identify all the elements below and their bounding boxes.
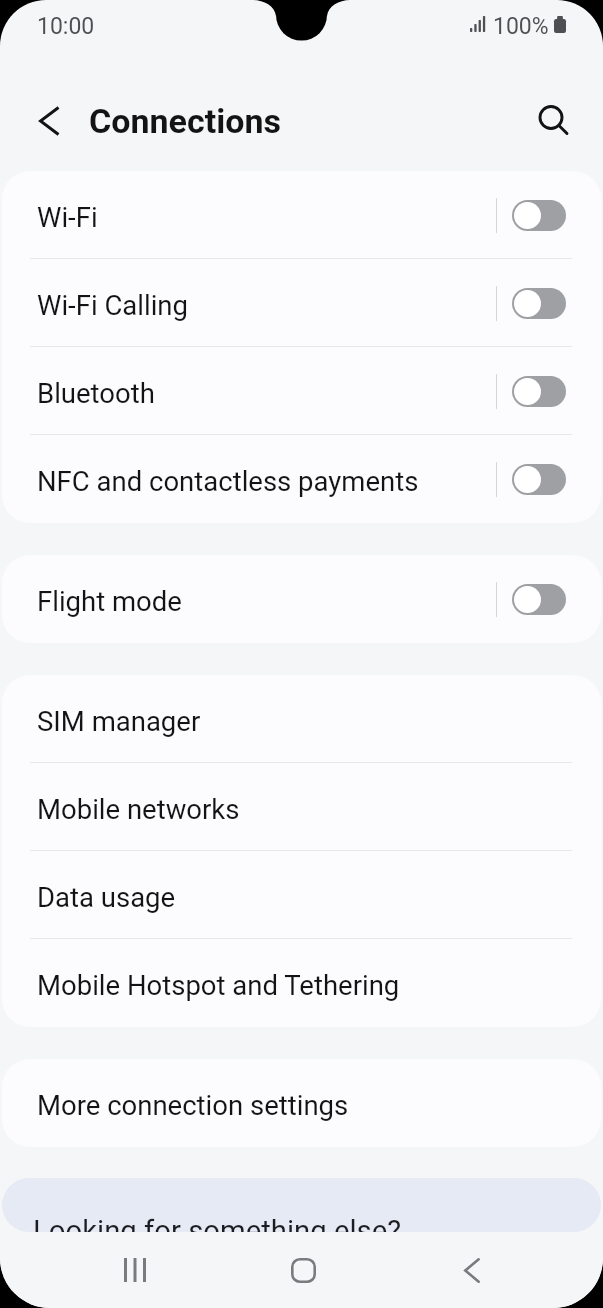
button[interactable]: Search xyxy=(526,93,582,149)
button[interactable]: Navigate up xyxy=(21,93,77,149)
staticText: Connections xyxy=(89,101,281,141)
button[interactable]: Mobile networks xyxy=(2,763,601,851)
button[interactable]: Toggle xyxy=(512,376,566,407)
button[interactable]: More connection settings xyxy=(2,1059,601,1147)
button[interactable]: Home xyxy=(248,1232,358,1308)
button[interactable]: NFC and contactless payments xyxy=(2,435,601,523)
button[interactable]: Wi-Fi xyxy=(2,171,601,259)
button[interactable]: Toggle xyxy=(512,584,566,615)
staticText: More connection settings xyxy=(37,1089,349,1121)
button[interactable]: Toggle xyxy=(512,288,566,319)
button[interactable]: Bluetooth xyxy=(2,347,601,435)
staticText: Wi-Fi xyxy=(37,201,496,233)
staticText: 100% xyxy=(493,13,549,40)
button[interactable]: Toggle xyxy=(512,200,566,231)
button[interactable]: SIM manager xyxy=(2,675,601,763)
staticText: SIM manager xyxy=(37,705,201,737)
staticText: Data usage xyxy=(37,881,176,913)
button[interactable]: Looking for something else? xyxy=(2,1178,601,1232)
button[interactable]: Mobile Hotspot and Tethering xyxy=(2,939,601,1027)
button[interactable]: Flight mode xyxy=(2,555,601,643)
staticText: Looking for something else? xyxy=(33,1214,402,1232)
button[interactable]: Back xyxy=(417,1232,527,1308)
staticText: Wi-Fi Calling xyxy=(37,289,496,321)
button[interactable]: Data usage xyxy=(2,851,601,939)
staticText: Bluetooth xyxy=(37,377,496,409)
staticText: NFC and contactless payments xyxy=(37,465,496,497)
staticText: 10:00 xyxy=(37,13,95,40)
button[interactable]: Recent apps xyxy=(80,1232,190,1308)
staticText: Mobile Hotspot and Tethering xyxy=(37,969,400,1001)
staticText: Flight mode xyxy=(37,585,496,617)
button[interactable]: Toggle xyxy=(512,464,566,495)
button[interactable]: Wi-Fi Calling xyxy=(2,259,601,347)
staticText: Mobile networks xyxy=(37,793,240,825)
